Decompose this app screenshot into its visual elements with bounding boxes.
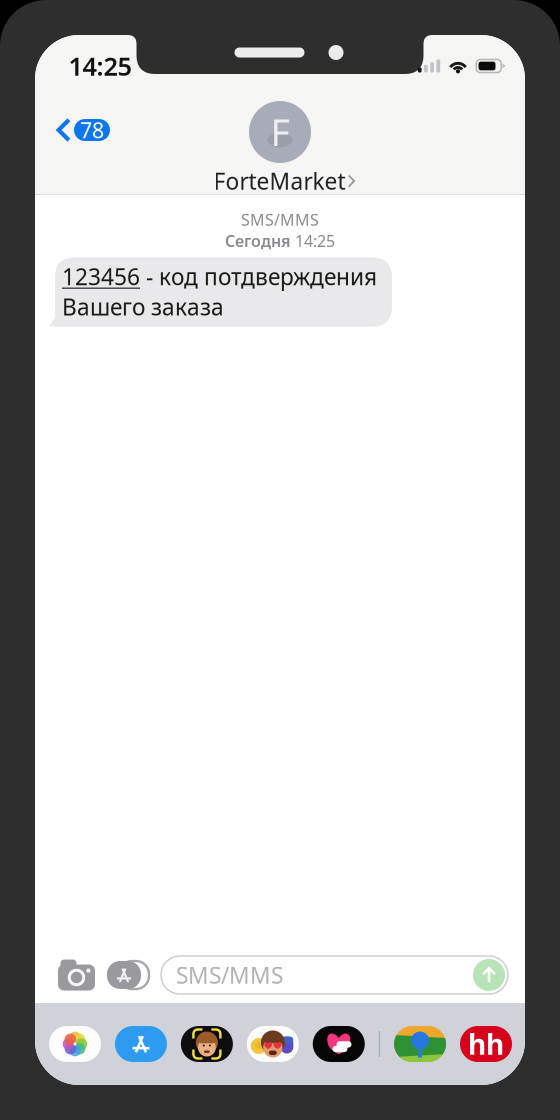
button[interactable]: 78 <box>35 107 120 153</box>
button[interactable]: Stickers <box>247 1026 299 1062</box>
button[interactable]: App Store <box>115 1026 167 1062</box>
staticText: SMS/MMS <box>176 960 283 990</box>
staticText: hh <box>468 1025 504 1063</box>
button[interactable]: Health <box>313 1026 365 1062</box>
staticText: 14:25 <box>68 49 131 83</box>
button[interactable]: Memoji <box>181 1026 233 1062</box>
button[interactable]: Photos <box>49 1026 101 1062</box>
staticText: ForteMarket <box>213 166 345 196</box>
button[interactable]: F <box>150 101 410 196</box>
button[interactable]: hh <box>460 1026 512 1062</box>
button[interactable]: Camera <box>35 947 107 1003</box>
button[interactable]: Send <box>473 959 508 991</box>
staticText: Сегодня 14:25 <box>225 230 335 251</box>
button[interactable]: Maps <box>394 1026 446 1062</box>
staticText: F <box>270 107 289 157</box>
staticText: 78 <box>80 116 104 144</box>
staticText: SMS/MMS <box>241 209 319 230</box>
button[interactable]: Apps <box>107 947 161 1003</box>
staticText: 123456 - код потдверждения Вашего заказа <box>62 261 377 322</box>
